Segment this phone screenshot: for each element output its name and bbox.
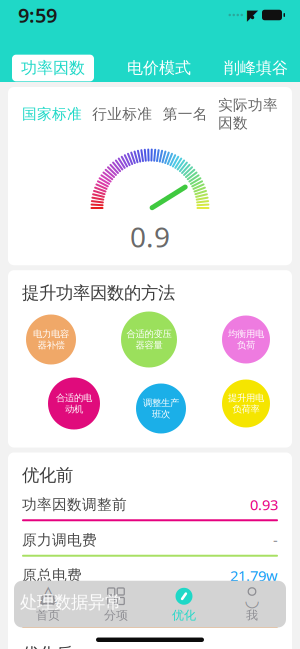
button[interactable]: 合适的电 (48, 377, 100, 429)
staticText: ◡ (244, 590, 259, 610)
staticText: 我 (246, 608, 258, 622)
staticText: 功率因数 (21, 58, 85, 78)
staticText: 优化前 (22, 464, 73, 486)
staticText: 合适的变压 (126, 328, 171, 339)
staticText: 功率因数调整前 (22, 495, 127, 513)
staticText: 首页 (36, 608, 60, 622)
staticText: 器补偿 (37, 339, 64, 351)
staticText: 负荷 (237, 339, 255, 351)
staticText: △ (39, 580, 56, 606)
staticText: 1.10 (250, 601, 278, 621)
staticText: 电力电容 (33, 328, 69, 339)
staticText: 行业标准 (92, 105, 152, 123)
button[interactable]: 优化 (150, 586, 218, 622)
button[interactable]: 电价模式 (127, 58, 191, 78)
staticText: 提升功率因数的方法 (22, 282, 175, 303)
staticText: 负荷率 (232, 403, 259, 415)
button[interactable]: 第一名 (163, 105, 208, 123)
staticText: 优化后 (22, 644, 73, 649)
staticText: 电价模式 (127, 58, 191, 78)
staticText: 原均价 (22, 602, 67, 620)
button[interactable]: △ (14, 586, 82, 622)
staticText: 原总电费 (22, 566, 82, 584)
button[interactable]: 提升用电 (222, 379, 270, 427)
staticText: 0.9 (130, 218, 170, 255)
staticText: 21.79w (230, 566, 278, 585)
staticText: 器容量 (135, 339, 162, 351)
button[interactable]: 分项 (82, 586, 150, 622)
staticText: 班次 (152, 408, 170, 420)
button[interactable]: 合适的变压 (121, 311, 177, 367)
staticText: 国家标准 (22, 105, 82, 123)
staticText: 分项 (104, 608, 128, 622)
button[interactable]: 行业标准 (92, 105, 152, 123)
staticText: ◤ (247, 7, 258, 23)
staticText: 0.93 (250, 495, 278, 514)
button[interactable]: 功率因数 (12, 55, 94, 81)
staticText: 9:59 (18, 2, 57, 28)
button[interactable]: 国家标准 (22, 105, 82, 123)
staticText: 优化 (172, 608, 196, 622)
button[interactable]: 削峰填谷 (224, 58, 288, 78)
staticText: 削峰填谷 (224, 58, 288, 78)
staticText: 实际功率因数 (218, 96, 278, 132)
staticText: 合适的电 (56, 392, 92, 403)
staticText: 均衡用电 (228, 328, 264, 339)
button[interactable]: 电力电容 (26, 314, 76, 364)
staticText: 调整生产 (143, 397, 179, 408)
button[interactable]: 调整生产 (136, 383, 186, 433)
staticText: 动机 (65, 403, 83, 415)
button[interactable]: ◡ (218, 586, 286, 622)
button[interactable]: 实际功率因数 (218, 96, 278, 132)
staticText: 提升用电 (228, 392, 264, 403)
button[interactable]: 均衡用电 (222, 315, 270, 363)
staticText: - (273, 530, 278, 550)
staticText: 原力调电费 (22, 531, 97, 549)
staticText: 第一名 (163, 105, 208, 123)
staticText: 处理数据异常 (20, 591, 122, 613)
